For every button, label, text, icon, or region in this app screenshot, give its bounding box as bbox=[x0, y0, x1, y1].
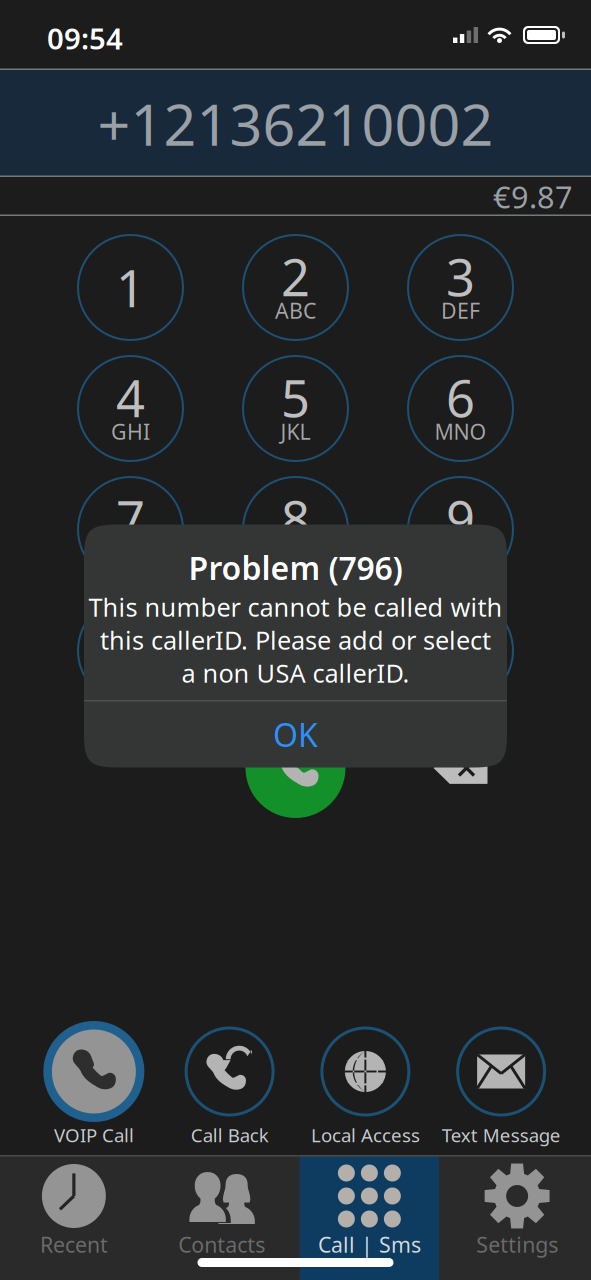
button[interactable]: VOIP Call bbox=[26, 1007, 162, 1155]
staticText: # bbox=[444, 617, 477, 684]
button[interactable]: 1 bbox=[77, 234, 184, 341]
staticText: Call | Sms bbox=[318, 1230, 421, 1259]
staticText: Contacts bbox=[178, 1230, 265, 1259]
staticText: * bbox=[116, 617, 144, 684]
button[interactable]: Call | Sms bbox=[295, 1155, 443, 1280]
staticText: 1 bbox=[116, 254, 145, 321]
staticText: MNO bbox=[434, 417, 486, 446]
staticText: 6 bbox=[446, 364, 475, 431]
staticText: 09:54 bbox=[47, 18, 123, 57]
staticText: 7 bbox=[116, 485, 145, 552]
button[interactable]: Recent bbox=[0, 1155, 148, 1280]
staticText: Recent bbox=[40, 1230, 108, 1259]
button[interactable]: Settings bbox=[443, 1155, 591, 1280]
staticText: 3 bbox=[446, 243, 475, 310]
staticText: 2 bbox=[281, 243, 310, 310]
button[interactable]: 6 bbox=[407, 355, 514, 462]
button[interactable]: Text Message bbox=[433, 1007, 569, 1155]
staticText: Problem (796) bbox=[188, 546, 402, 589]
staticText: GHI bbox=[111, 417, 150, 446]
staticText: JKL bbox=[280, 417, 310, 446]
button[interactable]: OK bbox=[84, 701, 507, 767]
button[interactable]: # bbox=[407, 597, 514, 704]
staticText: Settings bbox=[476, 1230, 558, 1259]
button[interactable]: 0 bbox=[242, 597, 349, 704]
staticText: DEF bbox=[441, 296, 480, 325]
staticText: TUV bbox=[275, 538, 316, 567]
staticText: OK bbox=[273, 713, 318, 756]
button[interactable]: 3 bbox=[407, 234, 514, 341]
staticText: Local Access bbox=[311, 1123, 420, 1147]
staticText: VOIP Call bbox=[54, 1123, 134, 1147]
button[interactable]: 9 bbox=[407, 476, 514, 583]
button[interactable]: Local Access bbox=[297, 1007, 433, 1155]
button[interactable]: Contacts bbox=[148, 1155, 296, 1280]
staticText: This number cannot be called with bbox=[88, 590, 502, 624]
button[interactable]: Backspace bbox=[407, 718, 514, 818]
staticText: 4 bbox=[116, 364, 145, 431]
button[interactable]: 7 bbox=[77, 476, 184, 583]
staticText: a non USA callerID. bbox=[181, 656, 409, 690]
button[interactable]: 5 bbox=[242, 355, 349, 462]
staticText: + bbox=[289, 659, 301, 688]
staticText: €9.87 bbox=[493, 176, 573, 217]
staticText: ABC bbox=[275, 296, 316, 325]
staticText: Call Back bbox=[191, 1123, 269, 1147]
staticText: Text Message bbox=[442, 1123, 561, 1147]
button[interactable]: 2 bbox=[242, 234, 349, 341]
staticText: this callerID. Please add or select bbox=[100, 623, 491, 657]
button[interactable]: 8 bbox=[242, 476, 349, 583]
button[interactable]: 4 bbox=[77, 355, 184, 462]
staticText: 5 bbox=[281, 364, 310, 431]
staticText: +12136210002 bbox=[97, 85, 493, 161]
staticText: 9 bbox=[446, 485, 475, 552]
staticText: 8 bbox=[281, 485, 310, 552]
button[interactable]: Call Back bbox=[162, 1007, 298, 1155]
button[interactable]: * bbox=[77, 597, 184, 704]
button[interactable]: Call bbox=[242, 718, 349, 818]
staticText: 0 bbox=[281, 606, 310, 673]
